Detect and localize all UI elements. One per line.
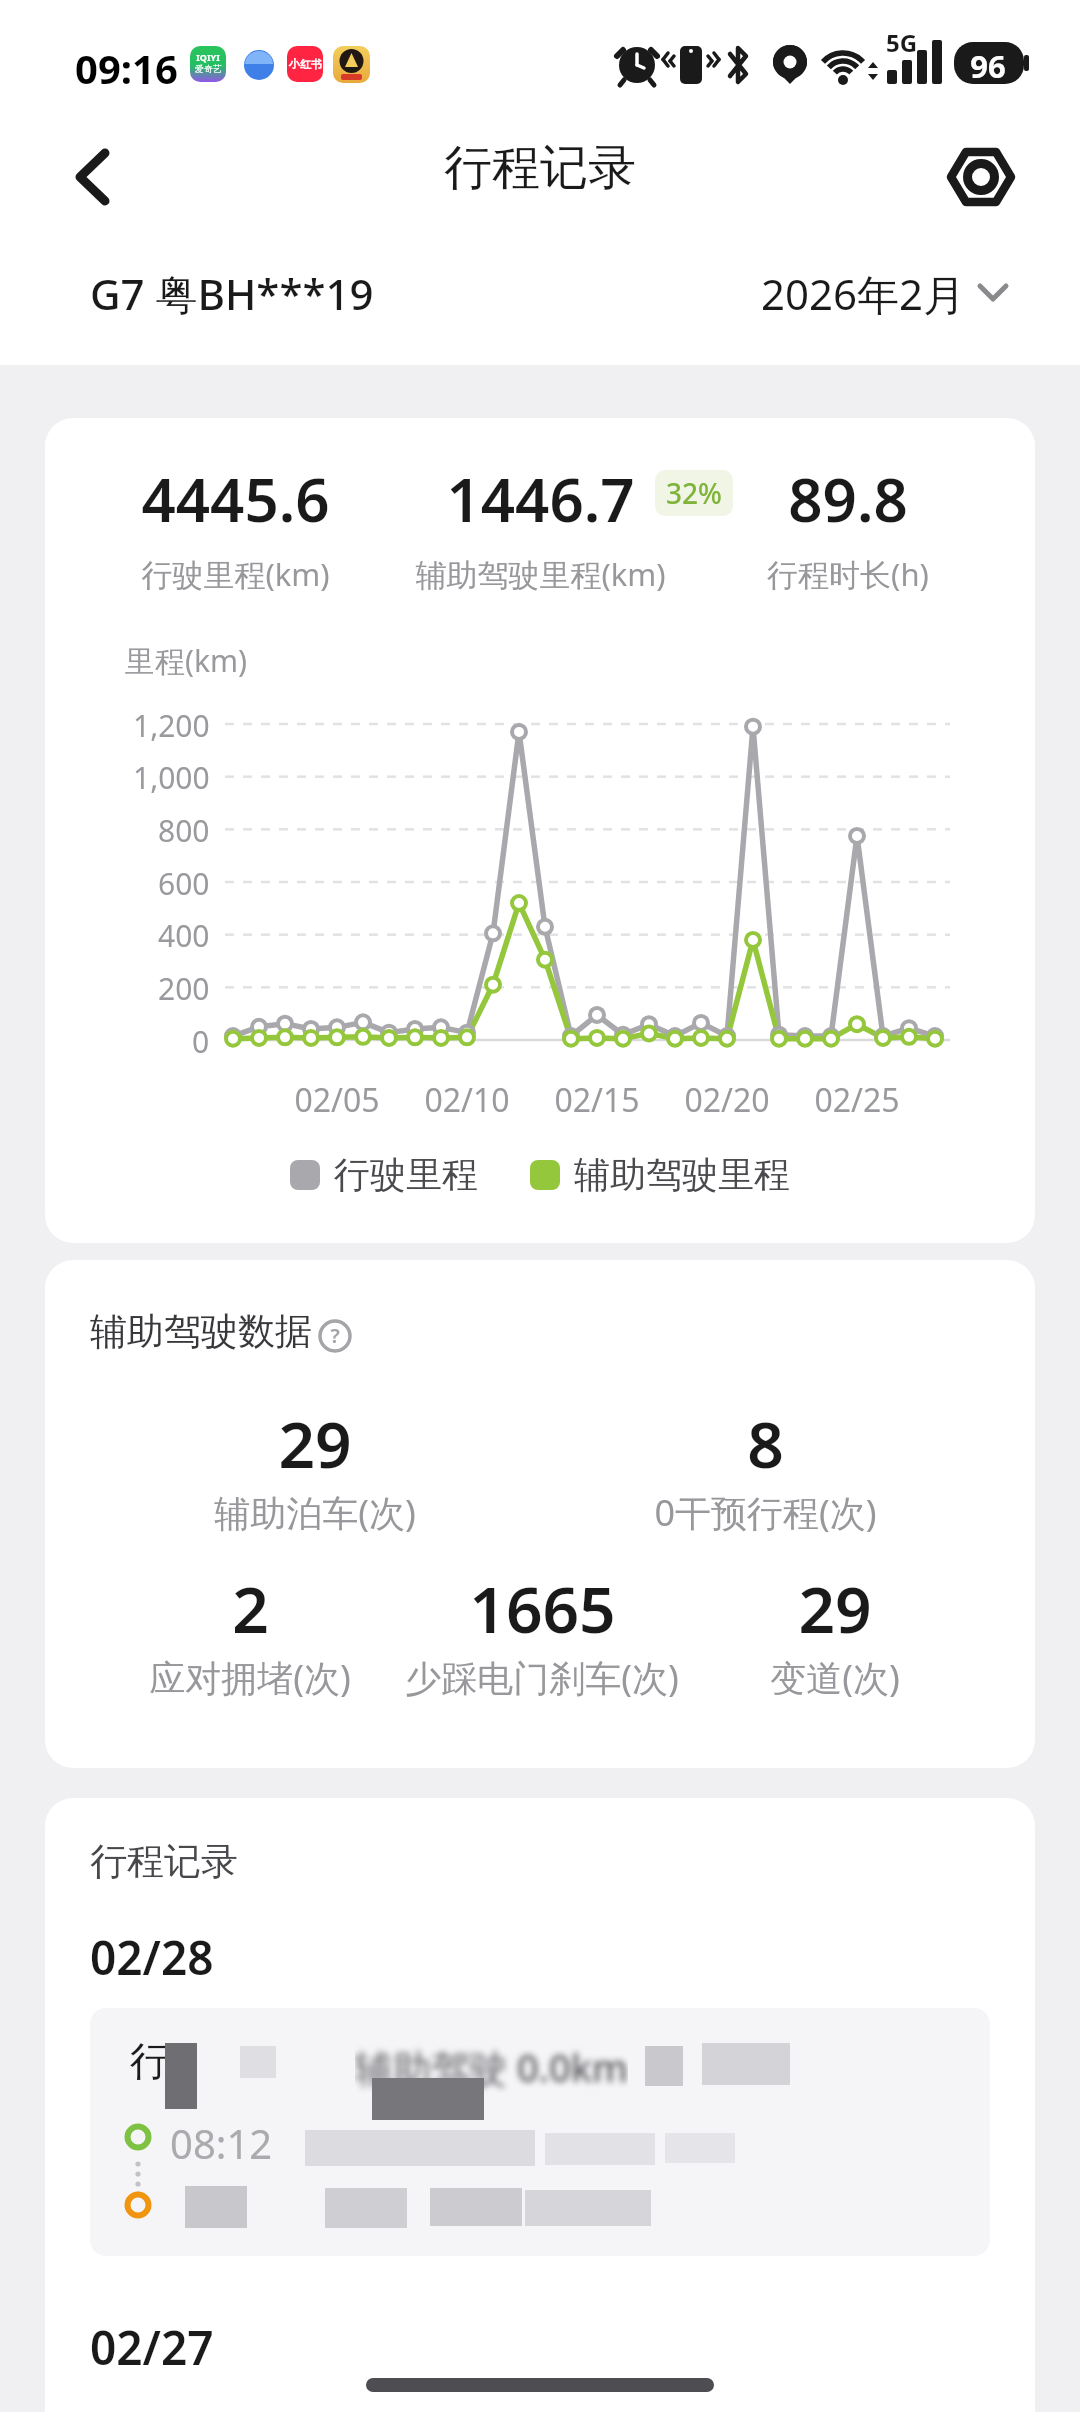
- staticText: 1446.7: [446, 458, 635, 540]
- staticText: 少踩电门刹车(次): [405, 1653, 679, 1702]
- staticText: 02/25: [814, 1078, 900, 1122]
- staticText: 600: [158, 863, 210, 904]
- staticText: 行驶里程(km): [141, 553, 330, 595]
- staticText: 小红书: [289, 57, 322, 71]
- staticText: 02/28: [90, 1926, 214, 1989]
- staticText: 1,200: [133, 705, 210, 746]
- staticText: 02/10: [424, 1078, 510, 1122]
- staticText: 行程记录: [444, 138, 636, 198]
- staticText: 辅助泊车(次): [214, 1488, 416, 1537]
- staticText: 辅助驾驶 0.0km: [355, 2041, 628, 2093]
- staticText: 变道(次): [770, 1653, 900, 1702]
- staticText: 行驶里程: [334, 1152, 478, 1197]
- staticText: 800: [158, 810, 210, 851]
- staticText: 爱奇艺: [195, 63, 222, 74]
- staticText: 2: [232, 1565, 269, 1652]
- staticText: 29: [798, 1565, 872, 1652]
- staticText: 02/20: [684, 1078, 770, 1122]
- staticText: 行程记录: [90, 1838, 238, 1885]
- staticText: 辅助驾驶里程(km): [415, 553, 666, 595]
- staticText: IQIYI: [196, 51, 220, 63]
- staticText: 1,000: [133, 757, 210, 798]
- staticText: 4445.6: [141, 458, 330, 540]
- staticText: 辅助驾驶里程: [574, 1152, 790, 1197]
- staticText: 辅助驾驶数据: [90, 1308, 312, 1355]
- staticText: 32%: [666, 474, 722, 512]
- staticText: 08:12: [170, 2116, 273, 2170]
- staticText: 02/15: [554, 1078, 640, 1122]
- staticText: 09:16: [75, 41, 178, 95]
- staticText: G7 粤BH***19: [90, 265, 374, 322]
- staticText: 400: [158, 915, 210, 956]
- staticText: 29: [278, 1400, 352, 1487]
- staticText: 02/27: [90, 2316, 214, 2379]
- staticText: 96: [970, 45, 1006, 87]
- staticText: 行: [130, 2036, 170, 2086]
- staticText: 5G: [886, 26, 918, 59]
- staticText: 8: [747, 1400, 784, 1487]
- staticText: 2026年2月: [761, 265, 966, 322]
- staticText: 里程(km): [125, 640, 248, 681]
- staticText: 应对拥堵(次): [149, 1653, 351, 1702]
- staticText: 1665: [469, 1565, 616, 1652]
- staticText: 行程时长(h): [767, 553, 929, 595]
- staticText: 200: [158, 968, 210, 1009]
- staticText: 89.8: [788, 458, 908, 540]
- staticText: 02/05: [294, 1078, 380, 1122]
- staticText: 0干预行程(次): [654, 1488, 877, 1537]
- staticText: 0: [192, 1021, 210, 1062]
- staticText: ?: [330, 1322, 340, 1349]
